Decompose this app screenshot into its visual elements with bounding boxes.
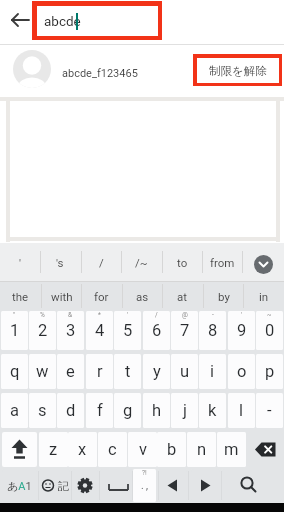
staticText: あA1: [7, 479, 32, 493]
button[interactable]: /: [81, 243, 121, 281]
button[interactable]: [158, 469, 187, 502]
button[interactable]: w: [29, 354, 56, 389]
staticText: -: [212, 311, 214, 319]
button[interactable]: 7: [171, 311, 198, 350]
button[interactable]: u: [171, 354, 198, 389]
staticText: r: [97, 362, 103, 381]
button[interactable]: 5: [114, 311, 141, 350]
button[interactable]: by: [203, 282, 244, 310]
staticText: t: [125, 362, 131, 381]
button[interactable]: p: [256, 354, 283, 389]
button[interactable]: [254, 255, 273, 274]
button[interactable]: s: [29, 393, 56, 428]
staticText: @: [182, 311, 188, 319]
staticText: ': [241, 311, 243, 319]
button[interactable]: l: [228, 393, 255, 428]
button[interactable]: x: [68, 432, 97, 467]
staticText: d: [66, 401, 76, 420]
button[interactable]: from: [202, 243, 242, 281]
staticText: at: [177, 290, 188, 303]
button[interactable]: . ,: [133, 469, 156, 502]
staticText: /~: [135, 256, 148, 269]
button[interactable]: /~: [121, 243, 161, 281]
button[interactable]: m: [217, 432, 246, 467]
staticText: ': [127, 311, 129, 319]
button[interactable]: q: [1, 354, 28, 389]
staticText: j: [183, 401, 187, 420]
staticText: y: [153, 362, 161, 381]
button[interactable]: z: [39, 432, 68, 467]
button[interactable]: 2: [29, 311, 56, 350]
staticText: q: [10, 362, 20, 381]
button[interactable]: [72, 469, 98, 502]
staticText: to: [177, 256, 188, 269]
button[interactable]: [191, 469, 220, 502]
button[interactable]: 1: [1, 311, 28, 350]
button[interactable]: e: [57, 354, 84, 389]
staticText: *: [98, 311, 101, 319]
button[interactable]: in: [243, 282, 284, 310]
button[interactable]: k: [199, 393, 226, 428]
button[interactable]: to: [162, 243, 202, 281]
button[interactable]: 4: [86, 311, 113, 350]
button[interactable]: 0: [256, 311, 283, 350]
button[interactable]: g: [114, 393, 141, 428]
button[interactable]: t: [114, 354, 141, 389]
button[interactable]: the: [0, 282, 41, 310]
button[interactable]: a: [1, 393, 28, 428]
button[interactable]: i: [199, 354, 226, 389]
staticText: m: [224, 440, 239, 459]
button[interactable]: [100, 469, 133, 502]
button[interactable]: j: [171, 393, 198, 428]
button[interactable]: abcde: [37, 6, 158, 36]
button[interactable]: あA1: [2, 469, 37, 502]
button[interactable]: [248, 432, 283, 467]
button[interactable]: 9: [228, 311, 255, 350]
staticText: 8: [208, 321, 218, 340]
button[interactable]: h: [143, 393, 170, 428]
staticText: -: [267, 401, 272, 420]
staticText: in: [259, 290, 269, 303]
button[interactable]: 制限を解除: [197, 58, 279, 83]
button[interactable]: d: [57, 393, 84, 428]
staticText: 5: [123, 321, 133, 340]
button[interactable]: r: [86, 354, 113, 389]
button[interactable]: for: [81, 282, 122, 310]
button[interactable]: b: [157, 432, 186, 467]
button[interactable]: 's: [40, 243, 80, 281]
button[interactable]: [8, 10, 34, 32]
staticText: 's: [56, 256, 64, 269]
staticText: 0: [265, 321, 275, 340]
button[interactable]: v: [128, 432, 157, 467]
staticText: l: [239, 401, 244, 420]
button[interactable]: n: [187, 432, 216, 467]
staticText: i: [210, 362, 215, 381]
staticText: ": [13, 311, 16, 319]
button[interactable]: f: [86, 393, 113, 428]
button[interactable]: [222, 469, 282, 502]
staticText: s: [38, 401, 47, 420]
button[interactable]: 8: [199, 311, 226, 350]
staticText: 制限を解除: [209, 64, 267, 78]
button[interactable]: [2, 432, 37, 467]
button[interactable]: 3: [57, 311, 84, 350]
staticText: %: [40, 311, 45, 319]
button[interactable]: 記: [39, 469, 70, 502]
staticText: ': [19, 256, 22, 269]
button[interactable]: abcde_f123465: [62, 66, 162, 80]
button[interactable]: ': [0, 243, 40, 281]
button[interactable]: -: [256, 393, 283, 428]
staticText: x: [78, 440, 87, 459]
button[interactable]: at: [162, 282, 203, 310]
button[interactable]: as: [122, 282, 163, 310]
staticText: 9: [237, 321, 247, 340]
staticText: . ,: [141, 480, 149, 492]
button[interactable]: y: [143, 354, 170, 389]
staticText: g: [123, 401, 133, 420]
button[interactable]: with: [41, 282, 82, 310]
staticText: with: [51, 290, 73, 303]
button[interactable]: o: [228, 354, 255, 389]
button[interactable]: c: [98, 432, 127, 467]
staticText: v: [139, 440, 147, 459]
button[interactable]: 6: [143, 311, 170, 350]
